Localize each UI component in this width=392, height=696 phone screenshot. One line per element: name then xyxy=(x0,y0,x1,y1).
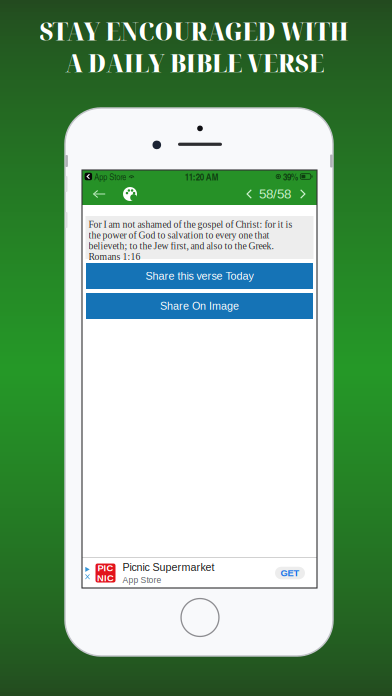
button[interactable]: Share this verse Today xyxy=(86,263,313,289)
staticText: PIC xyxy=(97,563,113,573)
button[interactable]: Back xyxy=(84,183,114,205)
staticText: Share On Image xyxy=(160,300,239,312)
button[interactable]: Next verse xyxy=(294,183,312,205)
button[interactable]: Change theme xyxy=(116,183,144,205)
staticText: GET xyxy=(280,568,299,578)
staticText: 58/58 xyxy=(259,187,291,201)
button[interactable]: Previous verse xyxy=(240,183,258,205)
staticText: App Store xyxy=(94,170,126,183)
staticText: Share this verse Today xyxy=(145,270,253,282)
staticText: 11:20 AM xyxy=(185,170,219,183)
button[interactable]: Share On Image xyxy=(86,293,313,319)
staticText: A DAILY BIBLE VERSE xyxy=(65,45,324,80)
button[interactable]: GET xyxy=(275,567,305,579)
staticText: For I am not ashamed of the gospel of Ch… xyxy=(88,219,292,262)
staticText: Picnic Supermarket xyxy=(122,561,214,573)
staticText: 39% xyxy=(283,170,298,183)
staticText: App Store xyxy=(122,575,161,585)
staticText: STAY ENCOURAGED WITH xyxy=(39,13,348,48)
staticText: NIC xyxy=(97,573,114,583)
